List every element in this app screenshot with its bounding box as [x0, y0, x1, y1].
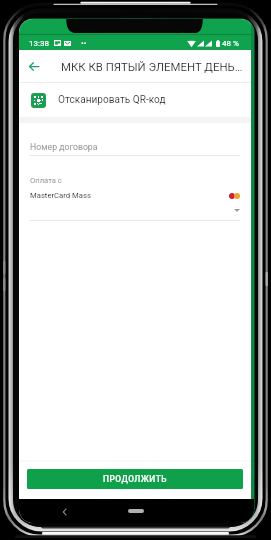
- staticText: ••: [81, 39, 87, 48]
- staticText: ПРОДОЛЖИТЬ: [103, 474, 168, 484]
- button[interactable]: Back: [59, 506, 70, 517]
- staticText: MasterCard Mass: [30, 191, 91, 200]
- button[interactable]: Home: [128, 509, 144, 513]
- button[interactable]: Back: [19, 50, 49, 82]
- button[interactable]: Отсканировать QR-код: [19, 83, 251, 117]
- staticText: Оплата с: [30, 176, 62, 185]
- staticText: 48 %: [222, 39, 239, 48]
- staticText: 13:38: [29, 39, 49, 48]
- button[interactable]: MasterCard Mass: [30, 191, 240, 200]
- button[interactable]: Номер договора: [30, 142, 98, 152]
- button[interactable]: ПРОДОЛЖИТЬ: [27, 469, 243, 489]
- staticText: МКК КВ ПЯТЫЙ ЭЛЕМЕНТ ДЕНЬ…: [61, 60, 243, 73]
- staticText: Отсканировать QR-код: [58, 94, 166, 106]
